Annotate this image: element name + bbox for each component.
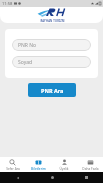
button[interactable]: Home bbox=[35, 172, 69, 183]
staticText: Biletlerim bbox=[31, 167, 46, 171]
button[interactable]: PNR Ara bbox=[28, 83, 76, 97]
button[interactable]: Soyad bbox=[12, 56, 91, 68]
button[interactable]: PNR No bbox=[12, 39, 91, 51]
staticText: Soyad bbox=[18, 59, 33, 66]
staticText: RAYHAN TURIZM bbox=[40, 19, 65, 23]
staticText: Sefer Ara bbox=[6, 167, 20, 171]
staticText: 11:58 bbox=[2, 1, 13, 6]
button[interactable]: Sefer Ara bbox=[0, 157, 25, 172]
button[interactable]: Daha Fazla bbox=[77, 157, 103, 172]
button[interactable]: Üyelik bbox=[51, 157, 77, 172]
staticText: Üyelik bbox=[59, 167, 69, 171]
staticText: PNR Ara bbox=[41, 87, 64, 94]
staticText: PNR No bbox=[18, 42, 37, 49]
button[interactable]: Recent apps bbox=[69, 172, 103, 183]
staticText: Daha Fazla bbox=[82, 167, 99, 171]
button[interactable]: Back bbox=[0, 172, 35, 183]
button[interactable]: Biletlerim bbox=[25, 157, 51, 172]
